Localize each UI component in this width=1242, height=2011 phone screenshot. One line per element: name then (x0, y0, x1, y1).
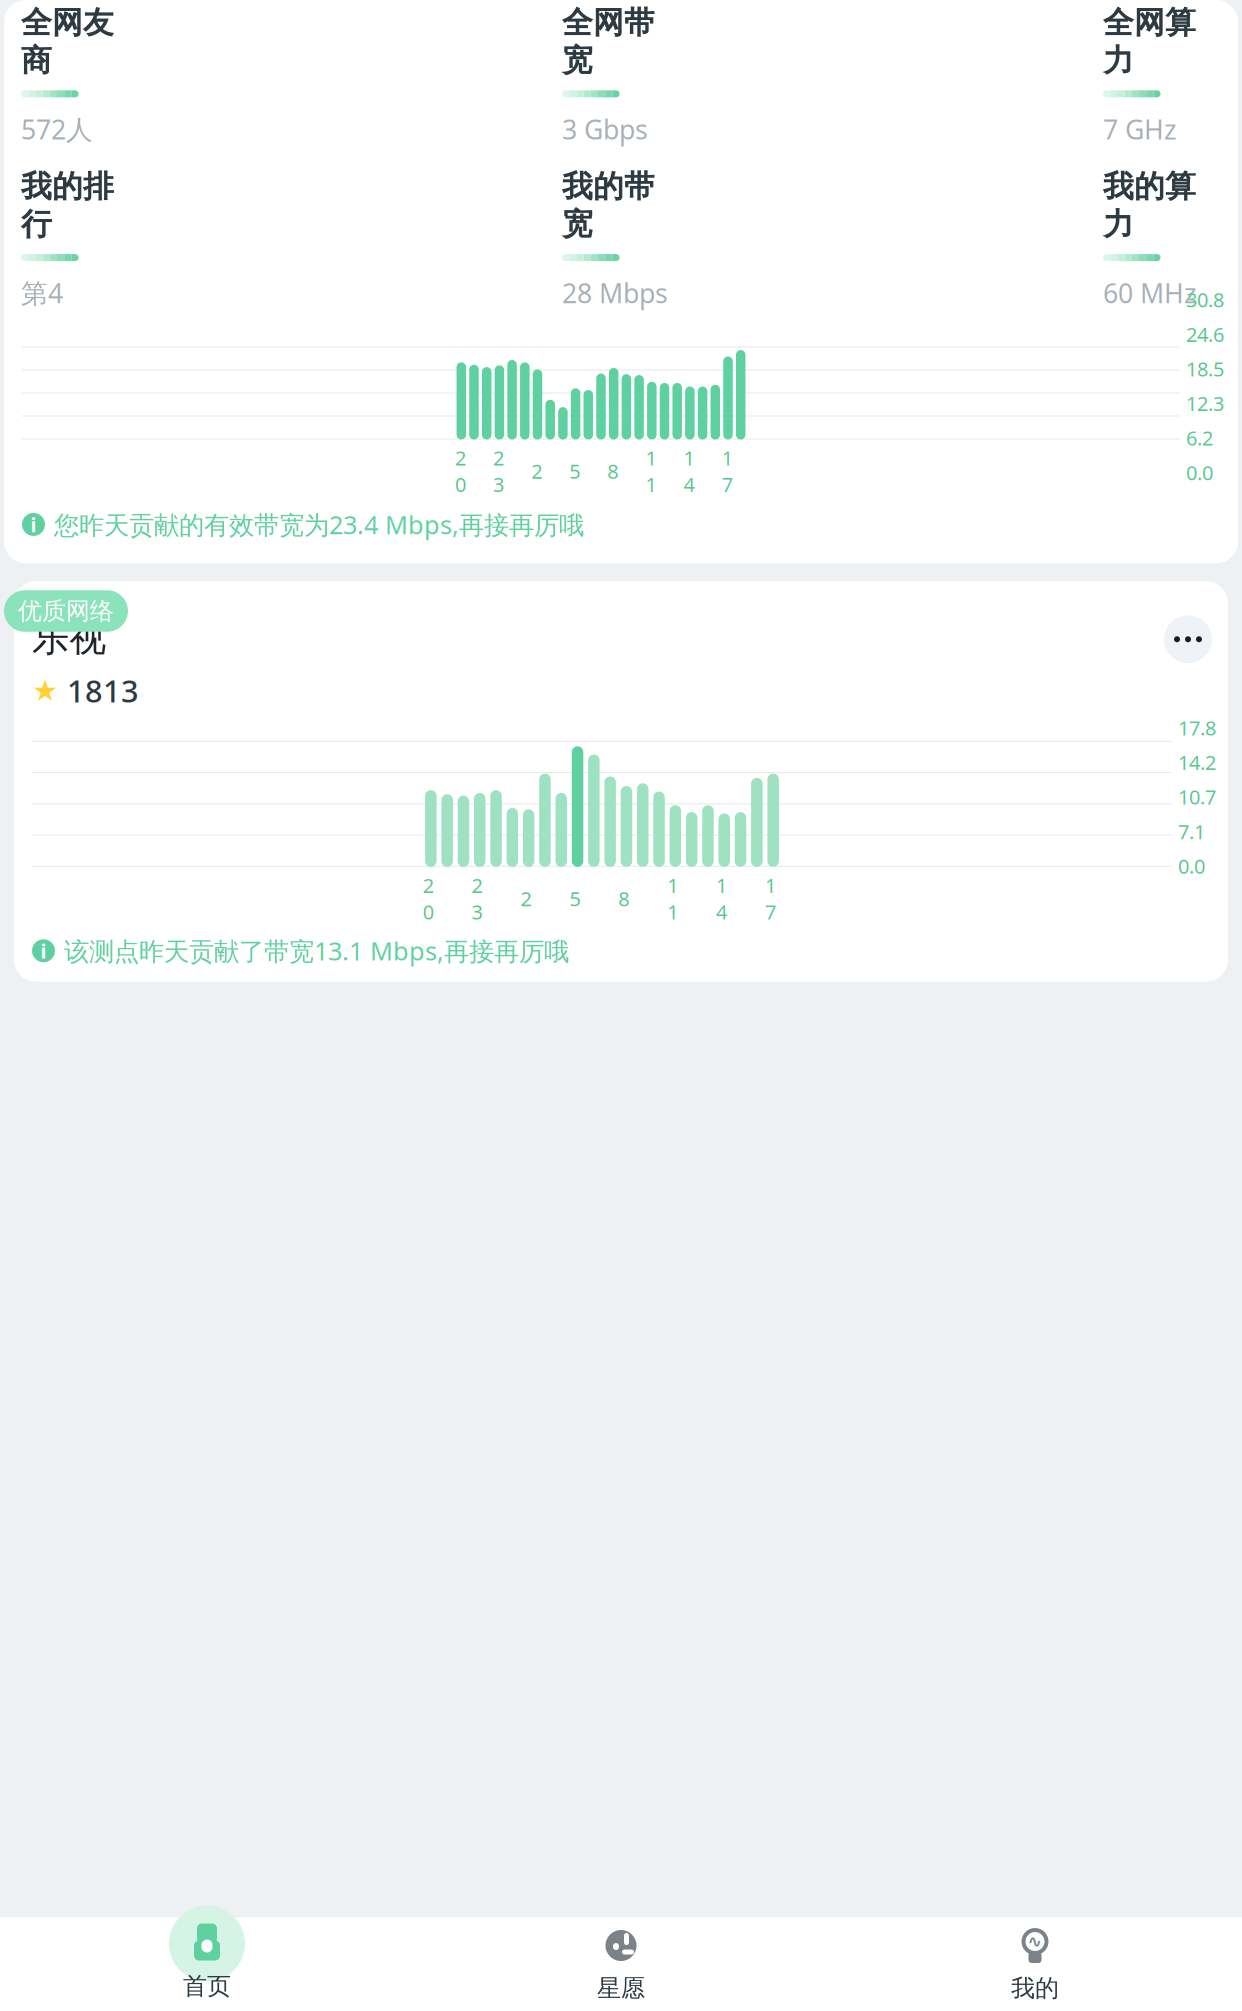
staticText: 第4 (21, 275, 63, 310)
staticText: 全网友商 (21, 4, 114, 79)
staticText: 20 (423, 872, 434, 925)
staticText: 5 (569, 885, 580, 912)
staticText: 17.8 (1178, 714, 1216, 741)
staticText: 24.6 (1186, 321, 1224, 347)
staticText: 23 (493, 444, 504, 498)
staticText: 23 (472, 872, 483, 925)
staticText: 28 Mbps (562, 275, 668, 310)
staticText: 17 (765, 872, 776, 925)
staticText: i (30, 511, 36, 538)
staticText: 14.2 (1178, 749, 1216, 776)
staticText: 2 (520, 885, 531, 912)
staticText: ∿ (1027, 1932, 1042, 1951)
staticText: 14 (716, 872, 727, 925)
staticText: 8 (607, 458, 618, 484)
staticText: 20 (455, 444, 466, 498)
staticText: 我的排行 (21, 168, 114, 243)
staticText: 18.5 (1186, 355, 1224, 382)
staticText: 8 (618, 885, 629, 912)
staticText: 全网带宽 (562, 4, 655, 79)
staticText: 1813 (67, 670, 139, 711)
staticText: 首页 (183, 1971, 231, 2001)
staticText: 全网算力 (1103, 4, 1196, 79)
staticText: 12.3 (1186, 390, 1224, 417)
staticText: 该测点昨天贡献了带宽13.1 Mbps,再接再厉哦 (64, 934, 569, 968)
staticText: 0.0 (1178, 853, 1205, 879)
staticText: 60 MHz (1103, 275, 1197, 310)
staticText: 乐视 (32, 615, 106, 661)
staticText: 0.0 (1186, 459, 1213, 486)
button[interactable]: 星愿 (414, 1919, 828, 2003)
button[interactable]: 首页 (0, 1921, 414, 2001)
staticText: ★ (32, 674, 58, 707)
staticText: 3 Gbps (562, 111, 648, 147)
button[interactable]: ∿ (828, 1919, 1242, 2003)
staticText: 我的算力 (1103, 168, 1196, 243)
staticText: 7 GHz (1103, 111, 1177, 147)
staticText: 11 (645, 444, 656, 498)
staticText: 我的 (1011, 1973, 1059, 2003)
staticText: 10.7 (1178, 784, 1216, 810)
staticText: 17 (722, 444, 733, 498)
staticText: 5 (569, 458, 580, 484)
staticText: 您昨天贡献的有效带宽为23.4 Mbps,再接再厉哦 (54, 508, 584, 541)
staticText: 我的带宽 (562, 168, 655, 243)
staticText: 6.2 (1186, 425, 1213, 451)
button[interactable]: More options (1164, 615, 1212, 663)
staticText: 优质网络 (18, 596, 114, 626)
staticText: 30.8 (1186, 286, 1224, 313)
staticText: i (40, 937, 46, 964)
staticText: 11 (667, 872, 678, 925)
staticText: 572人 (21, 111, 93, 147)
staticText: 星愿 (597, 1973, 645, 2003)
staticText: 7.1 (1178, 818, 1205, 845)
staticText: 14 (683, 444, 694, 498)
staticText: 2 (531, 458, 542, 484)
